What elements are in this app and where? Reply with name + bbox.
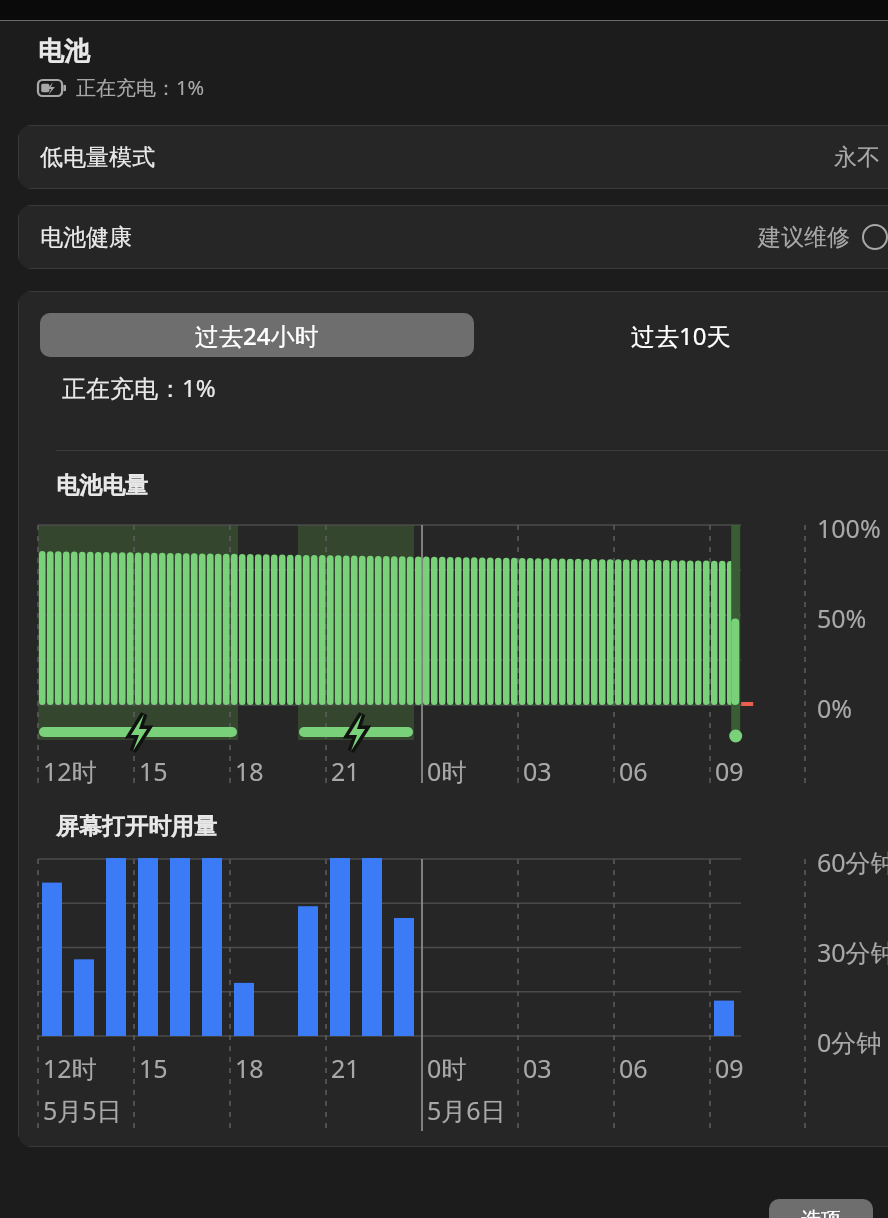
staticText: 21 bbox=[331, 754, 360, 788]
button[interactable]: 低电量模式 bbox=[18, 125, 888, 189]
staticText: 建议维修 bbox=[758, 223, 850, 252]
staticText: 30分钟 bbox=[817, 935, 888, 969]
staticText: 09 bbox=[715, 754, 744, 788]
staticText: 06 bbox=[619, 1051, 648, 1085]
staticText: 12时 bbox=[43, 754, 97, 788]
staticText: 03 bbox=[523, 754, 552, 788]
staticText: 0% bbox=[817, 691, 853, 725]
staticText: 5月6日 bbox=[427, 1093, 506, 1127]
button[interactable]: 电池健康 bbox=[18, 205, 888, 269]
staticText: 03 bbox=[523, 1051, 552, 1085]
staticText: 09 bbox=[715, 1051, 744, 1085]
staticText: 15 bbox=[139, 754, 168, 788]
staticText: 屏幕打开时用量 bbox=[56, 812, 217, 841]
staticText: 100% bbox=[817, 511, 881, 545]
staticText: 正在充电：1% bbox=[76, 74, 205, 101]
staticText: 过去10天 bbox=[631, 319, 731, 352]
button[interactable]: 选项 bbox=[769, 1199, 873, 1218]
staticText: 正在充电：1% bbox=[62, 371, 216, 404]
staticText: 06 bbox=[619, 754, 648, 788]
staticText: 电池健康 bbox=[40, 223, 132, 252]
staticText: 50% bbox=[817, 601, 867, 635]
staticText: 电池电量 bbox=[56, 471, 148, 500]
button[interactable]: 过去10天 bbox=[474, 313, 888, 357]
staticText: 永不 bbox=[834, 143, 880, 172]
staticText: 5月5日 bbox=[43, 1093, 122, 1127]
staticText: 15 bbox=[139, 1051, 168, 1085]
staticText: 12时 bbox=[43, 1051, 97, 1085]
staticText: 0分钟 bbox=[817, 1025, 882, 1059]
staticText: 0时 bbox=[427, 1051, 467, 1085]
staticText: 过去24小时 bbox=[195, 319, 319, 352]
staticText: 18 bbox=[235, 1051, 264, 1085]
staticText: 60分钟 bbox=[817, 845, 888, 879]
staticText: 电池 bbox=[38, 35, 90, 68]
button[interactable]: 过去24小时 bbox=[40, 313, 474, 357]
staticText: 21 bbox=[331, 1051, 360, 1085]
staticText: 18 bbox=[235, 754, 264, 788]
staticText: 低电量模式 bbox=[40, 143, 155, 172]
staticText: 选项 bbox=[801, 1207, 841, 1218]
staticText: 0时 bbox=[427, 754, 467, 788]
